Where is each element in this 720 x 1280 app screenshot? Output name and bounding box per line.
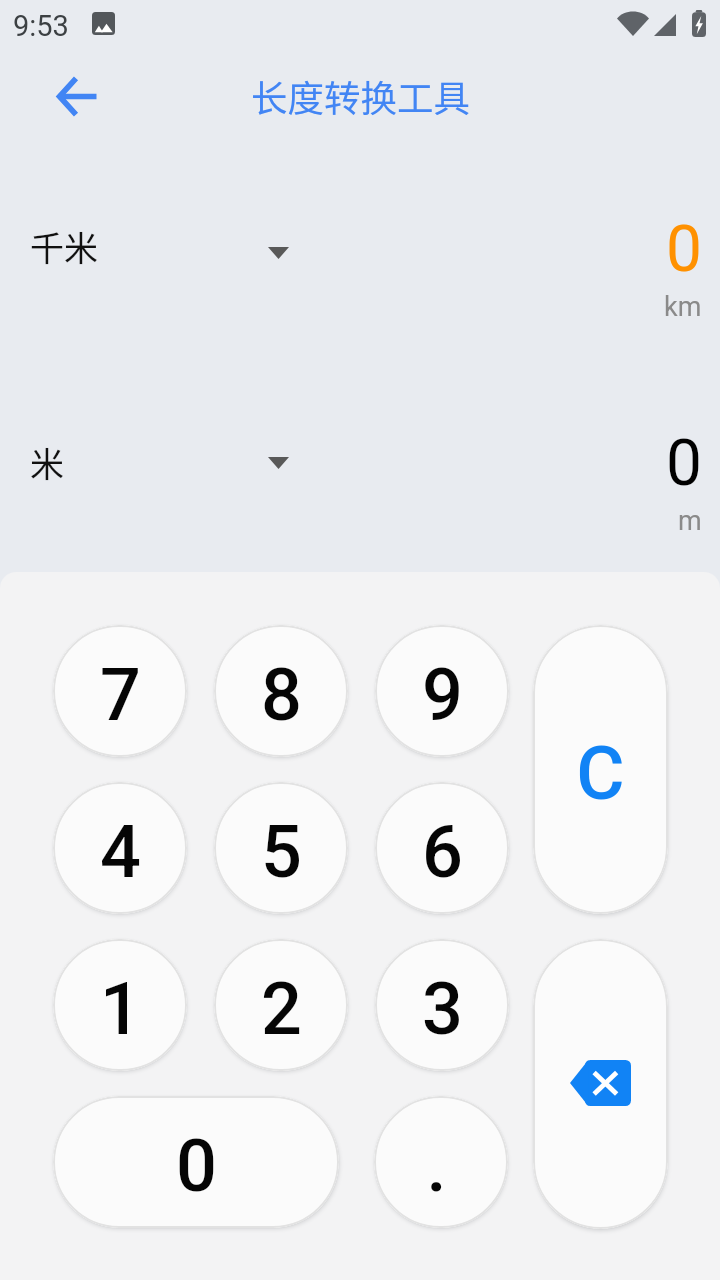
button[interactable]: 0 — [53, 1096, 339, 1228]
staticText: . — [426, 1124, 447, 1208]
staticText: 长度转换工具 — [251, 70, 470, 123]
staticText: 千米 — [30, 222, 98, 271]
staticText: 7 — [100, 653, 141, 737]
button[interactable]: . — [374, 1096, 508, 1228]
staticText: C — [576, 730, 625, 817]
staticText: 0 — [666, 212, 702, 287]
button[interactable]: 2 — [214, 939, 348, 1071]
button[interactable]: 6 — [375, 782, 509, 914]
staticText: 6 — [422, 810, 463, 894]
button[interactable]: 3 — [375, 939, 509, 1071]
staticText: km — [664, 291, 702, 323]
staticText: 3 — [422, 967, 463, 1051]
button[interactable]: 1 — [53, 939, 187, 1071]
staticText: 0 — [176, 1124, 217, 1208]
button[interactable]: 7 — [53, 625, 187, 757]
staticText: 5 — [261, 810, 302, 894]
button[interactable]: 千米 — [0, 198, 720, 294]
staticText: 9:53 — [13, 9, 69, 43]
staticText: 1 — [100, 967, 141, 1051]
button[interactable]: Backspace — [533, 939, 668, 1229]
button[interactable]: 米 — [0, 414, 720, 510]
staticText: 8 — [261, 653, 302, 737]
staticText: m — [678, 505, 702, 537]
button[interactable]: 5 — [214, 782, 348, 914]
staticText: 2 — [261, 967, 302, 1051]
staticText: 米 — [30, 438, 64, 487]
button[interactable]: 9 — [375, 625, 509, 757]
button[interactable]: C — [533, 625, 668, 914]
staticText: 0 — [666, 426, 702, 501]
button[interactable]: Back — [48, 68, 106, 124]
staticText: 9 — [422, 653, 463, 737]
button[interactable]: 8 — [214, 625, 348, 757]
button[interactable]: 4 — [53, 782, 187, 914]
staticText: 4 — [100, 810, 141, 894]
